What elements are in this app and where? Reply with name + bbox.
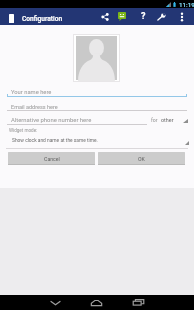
staticText: OK [138, 156, 145, 162]
button[interactable]: Alternative phone number here [0, 115, 194, 126]
staticText: Widget mode: [9, 128, 38, 133]
staticText: Cancel [44, 156, 60, 162]
button[interactable]: Messaging [112, 8, 131, 25]
button[interactable]: Cancel [8, 152, 95, 165]
staticText: 11:19 [179, 1, 194, 8]
button[interactable]: Share [95, 8, 114, 25]
button[interactable]: More options [172, 8, 191, 25]
button[interactable]: Show clock and name at the same time. [0, 137, 194, 145]
staticText: Your name here [11, 89, 52, 96]
button[interactable]: other [158, 114, 190, 126]
staticText: Email address here [11, 104, 58, 110]
button[interactable]: Help [134, 8, 153, 25]
staticText: Alternative phone number here [11, 117, 92, 124]
staticText: other [161, 117, 174, 123]
button[interactable]: Back [41, 295, 69, 310]
button[interactable]: Your name here [0, 87, 194, 98]
button[interactable]: OK [98, 152, 185, 165]
button[interactable]: Tools [152, 8, 171, 25]
staticText: Show clock and name at the same time. [12, 138, 98, 144]
staticText: ? [141, 11, 146, 22]
button[interactable]: Home [82, 295, 110, 310]
staticText: Configuration [22, 15, 63, 23]
button[interactable]: Email address here [0, 101, 194, 112]
staticText: for [151, 117, 158, 123]
button[interactable]: Contact photo [73, 34, 120, 82]
button[interactable]: Recent apps [124, 295, 152, 310]
